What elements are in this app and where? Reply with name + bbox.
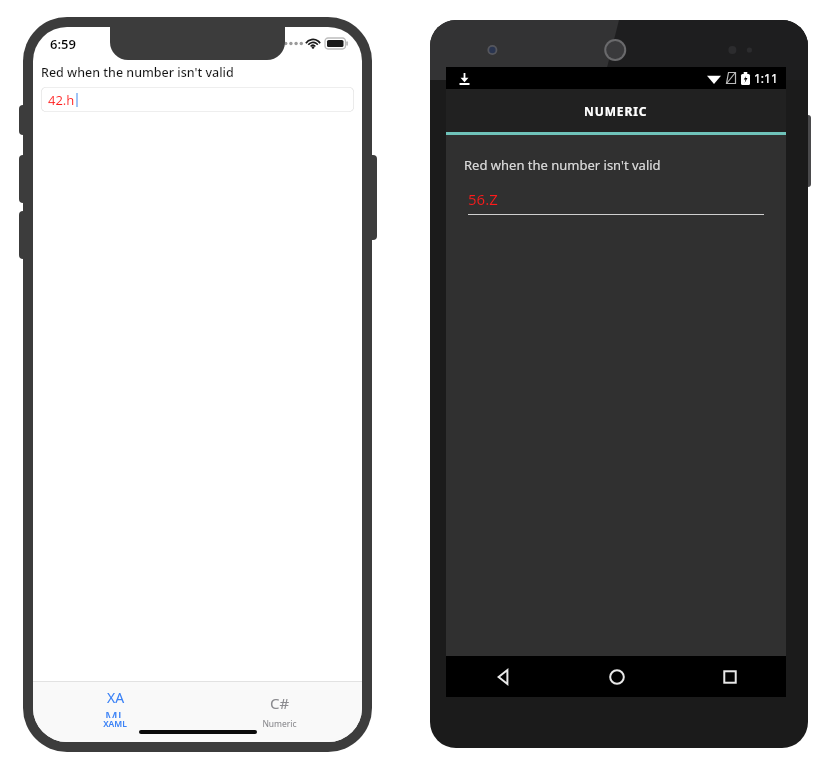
staticText: 56.Z (468, 189, 498, 209)
button[interactable]: XA (33, 686, 197, 742)
staticText: XAML (103, 718, 127, 730)
staticText: NUMERIC (584, 103, 648, 119)
staticText: ML (105, 707, 126, 718)
button[interactable]: Home (560, 656, 673, 697)
button[interactable]: 56.Z (468, 189, 764, 215)
staticText: XA (107, 688, 125, 707)
staticText: Red when the number isn't valid (464, 156, 661, 174)
button[interactable]: Back (446, 656, 560, 697)
staticText: 1:11 (754, 70, 778, 86)
staticText: Red when the number isn't valid (41, 64, 234, 81)
button[interactable]: C# (197, 686, 362, 742)
staticText: C# (270, 693, 290, 713)
button[interactable]: Recents (673, 656, 786, 697)
button[interactable]: 42.h (41, 87, 354, 112)
staticText: Numeric (262, 718, 297, 730)
staticText: 42.h (48, 91, 75, 109)
staticText: 6:59 (50, 35, 76, 53)
